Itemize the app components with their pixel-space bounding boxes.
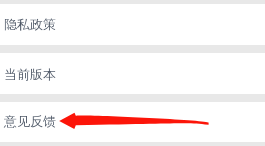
staticText: 当前版本 xyxy=(4,66,56,82)
staticText: 意见反馈 xyxy=(4,113,56,129)
staticText: 隐私政策 xyxy=(4,16,56,32)
button[interactable]: 隐私政策 xyxy=(0,4,265,45)
button[interactable]: 当前版本 xyxy=(0,53,265,94)
other: Annotation arrow xyxy=(0,0,265,146)
button[interactable]: 意见反馈 xyxy=(0,102,265,142)
